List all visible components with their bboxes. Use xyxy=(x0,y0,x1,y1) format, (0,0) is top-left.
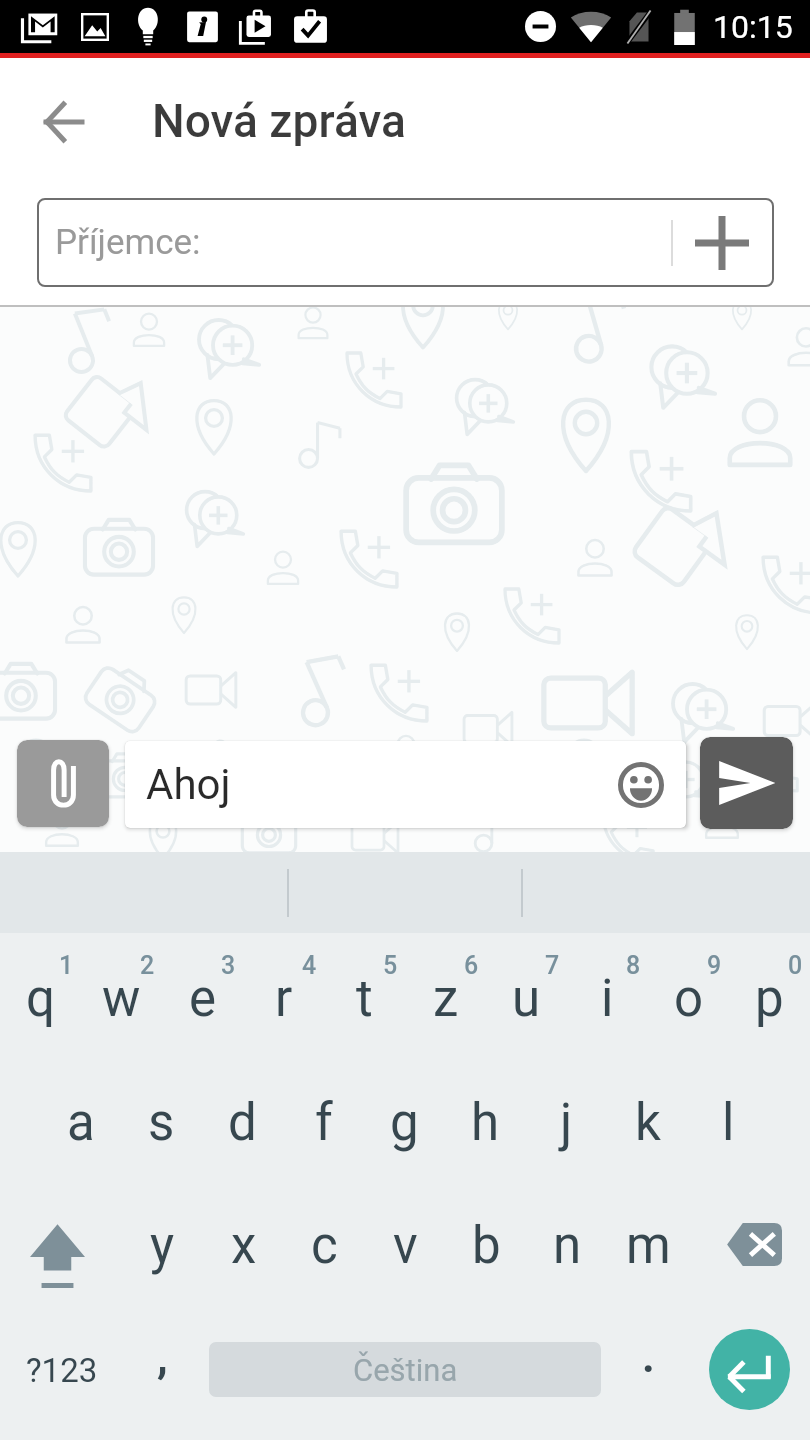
staticText: 6 xyxy=(464,951,479,980)
staticText: h xyxy=(471,1093,500,1153)
staticText: 0 xyxy=(788,951,803,980)
staticText: 9 xyxy=(707,951,722,980)
staticText: w xyxy=(102,969,141,1029)
button[interactable]: a xyxy=(40,1059,121,1182)
staticText: ?123 xyxy=(26,1351,98,1390)
staticText: i xyxy=(601,969,614,1029)
button[interactable]: 1 xyxy=(0,936,81,1059)
button[interactable]: Emoji xyxy=(613,757,669,813)
button[interactable]: , xyxy=(122,1305,203,1428)
button[interactable]: 6 xyxy=(405,936,486,1059)
staticText: 10:15 xyxy=(713,8,793,46)
staticText: Ahoj xyxy=(146,760,231,809)
button[interactable]: j xyxy=(526,1059,607,1182)
button[interactable]: b xyxy=(446,1182,527,1305)
staticText: d xyxy=(228,1093,257,1153)
button[interactable]: Backspace xyxy=(689,1182,810,1305)
button[interactable]: 7 xyxy=(486,936,567,1059)
button[interactable]: . xyxy=(608,1305,689,1428)
staticText: m xyxy=(626,1216,671,1276)
staticText: z xyxy=(433,969,459,1029)
button[interactable]: c xyxy=(284,1182,365,1305)
button[interactable]: Shift xyxy=(0,1182,122,1305)
staticText: , xyxy=(157,1331,168,1383)
button[interactable]: 3 xyxy=(162,936,243,1059)
staticText: o xyxy=(674,969,704,1029)
button[interactable]: ?123 xyxy=(0,1305,122,1428)
button[interactable]: s xyxy=(121,1059,202,1182)
staticText: s xyxy=(148,1093,175,1153)
button[interactable]: Enter xyxy=(709,1329,790,1410)
button[interactable]: Ahoj xyxy=(125,741,686,828)
staticText: 5 xyxy=(383,951,398,980)
button[interactable]: l xyxy=(688,1059,769,1182)
button[interactable]: y xyxy=(122,1182,203,1305)
staticText: a xyxy=(67,1093,95,1153)
button[interactable]: Send xyxy=(700,737,793,829)
button[interactable]: 0 xyxy=(729,936,810,1059)
button[interactable]: 2 xyxy=(81,936,162,1059)
button[interactable]: n xyxy=(527,1182,608,1305)
button[interactable]: 9 xyxy=(648,936,729,1059)
button[interactable]: Add recipient xyxy=(677,198,767,287)
staticText: v xyxy=(393,1216,418,1276)
staticText: n xyxy=(553,1216,582,1276)
button[interactable]: m xyxy=(608,1182,689,1305)
button[interactable]: f xyxy=(283,1059,364,1182)
button[interactable]: 8 xyxy=(567,936,648,1059)
staticText: e xyxy=(189,969,217,1029)
staticText: 1 xyxy=(59,951,74,980)
staticText: . xyxy=(642,1331,655,1383)
staticText: k xyxy=(635,1093,661,1153)
button[interactable]: Čeština xyxy=(209,1342,601,1397)
staticText: Nová zpráva xyxy=(152,94,406,148)
staticText: p xyxy=(755,969,784,1029)
staticText: 3 xyxy=(221,951,236,980)
staticText: t xyxy=(356,969,373,1029)
staticText: Příjemce: xyxy=(55,222,201,263)
staticText: b xyxy=(472,1216,501,1276)
staticText: c xyxy=(311,1216,338,1276)
staticText: g xyxy=(390,1093,419,1153)
staticText: l xyxy=(722,1093,735,1153)
staticText: x xyxy=(231,1216,257,1276)
button[interactable]: g xyxy=(364,1059,445,1182)
button[interactable]: Attach xyxy=(17,740,109,827)
staticText: 4 xyxy=(302,951,317,980)
staticText: Čeština xyxy=(353,1352,458,1388)
button[interactable]: v xyxy=(365,1182,446,1305)
staticText: j xyxy=(560,1093,573,1153)
staticText: q xyxy=(26,969,55,1029)
staticText: u xyxy=(512,969,541,1029)
staticText: r xyxy=(275,969,293,1029)
button[interactable]: Příjemce: xyxy=(37,198,774,287)
button[interactable]: Back xyxy=(27,85,101,159)
staticText: f xyxy=(315,1093,333,1153)
button[interactable]: k xyxy=(607,1059,688,1182)
button[interactable]: 4 xyxy=(243,936,324,1059)
button[interactable]: x xyxy=(203,1182,284,1305)
staticText: 2 xyxy=(140,951,155,980)
button[interactable]: 5 xyxy=(324,936,405,1059)
button[interactable]: h xyxy=(445,1059,526,1182)
staticText: 7 xyxy=(545,951,560,980)
staticText: 8 xyxy=(626,951,641,980)
button[interactable]: d xyxy=(202,1059,283,1182)
staticText: y xyxy=(150,1216,175,1276)
